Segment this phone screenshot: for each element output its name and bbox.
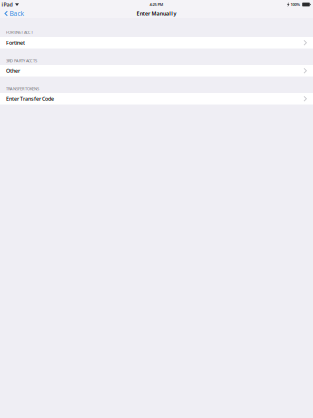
staticText: Fortinet: [6, 39, 25, 46]
staticText: iPad: [1, 1, 12, 8]
staticText: 100%: [291, 2, 301, 7]
staticText: Enter Manually: [136, 10, 176, 17]
staticText: FORTINET ACCT: [6, 29, 33, 35]
staticText: Back: [9, 9, 24, 18]
staticText: 3RD PARTY ACCTS: [6, 58, 37, 63]
staticText: Enter Transfer Code: [6, 95, 54, 102]
staticText: TRANSFER TOKENS: [6, 86, 39, 91]
staticText: Other: [6, 67, 20, 74]
staticText: 4:25 PM: [149, 2, 163, 7]
button[interactable]: Enter Transfer Code: [0, 93, 313, 104]
button[interactable]: Back: [0, 9, 29, 18]
button[interactable]: Other: [0, 65, 313, 76]
button[interactable]: Fortinet: [0, 37, 313, 48]
